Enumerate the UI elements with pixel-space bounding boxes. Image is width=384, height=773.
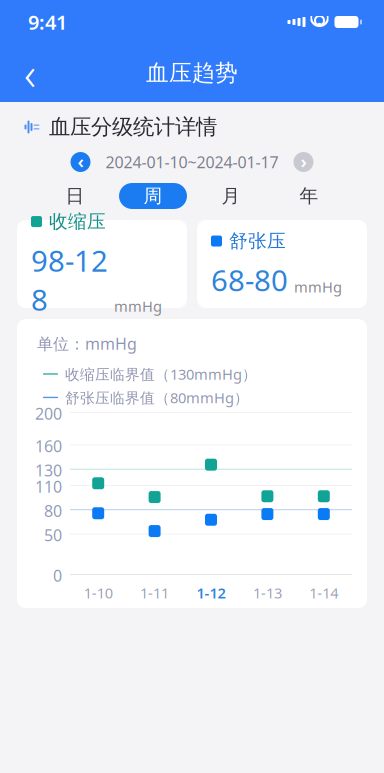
- staticText: 日: [65, 184, 84, 207]
- button[interactable]: 返回: [8, 51, 52, 95]
- staticText: 50: [44, 524, 62, 546]
- staticText: 单位：mmHg: [37, 333, 137, 354]
- staticText: 年: [299, 184, 318, 207]
- staticText: 血压分级统计详情: [49, 114, 217, 140]
- staticText: 98-128: [31, 241, 108, 319]
- staticText: 9:41: [28, 9, 67, 35]
- staticText: 1-14: [309, 583, 338, 602]
- staticText: 1-12: [196, 583, 225, 602]
- staticText: 1-13: [253, 583, 282, 602]
- button[interactable]: 下一周: [290, 149, 316, 175]
- staticText: 110: [35, 476, 62, 497]
- button[interactable]: 周: [114, 179, 192, 213]
- staticText: 1-10: [84, 583, 113, 602]
- staticText: 1-11: [140, 583, 169, 602]
- button[interactable]: 上一周: [67, 149, 93, 175]
- staticText: 收缩压: [49, 210, 106, 233]
- staticText: 2024-01-10~2024-01-17: [105, 151, 278, 173]
- staticText: 血压趋势: [146, 59, 238, 87]
- staticText: mmHg: [114, 296, 162, 316]
- staticText: 200: [35, 403, 62, 424]
- staticText: ›: [300, 149, 306, 173]
- staticText: 月: [221, 184, 240, 207]
- staticText: 0: [53, 565, 62, 586]
- staticText: 80: [44, 500, 62, 521]
- staticText: 舒张压: [229, 230, 286, 252]
- staticText: mmHg: [294, 277, 342, 296]
- staticText: 160: [35, 435, 62, 457]
- staticText: 周: [143, 184, 162, 207]
- button[interactable]: 日: [36, 179, 114, 213]
- button[interactable]: 年: [270, 179, 348, 213]
- staticText: 130: [35, 460, 62, 481]
- staticText: 舒张压临界值（80mmHg）: [65, 388, 249, 407]
- staticText: 68-80: [211, 260, 288, 299]
- staticText: ‹: [24, 43, 36, 103]
- staticText: 收缩压临界值（130mmHg）: [65, 364, 257, 384]
- staticText: ‹: [77, 149, 83, 173]
- button[interactable]: 月: [192, 179, 270, 213]
